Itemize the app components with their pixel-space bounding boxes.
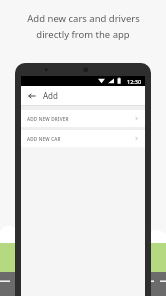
staticText: ADD NEW CAR (27, 136, 134, 142)
button[interactable]: ADD NEW DRIVER (21, 110, 145, 127)
staticText: Add (43, 90, 58, 101)
staticText: Add new cars and drivers (27, 12, 140, 25)
staticText: 12:30 (127, 78, 142, 85)
staticText: ADD NEW DRIVER (27, 116, 134, 122)
staticText: directly from the app (36, 28, 130, 41)
button[interactable]: Back (25, 89, 39, 103)
button[interactable]: ADD NEW CAR (21, 130, 145, 147)
